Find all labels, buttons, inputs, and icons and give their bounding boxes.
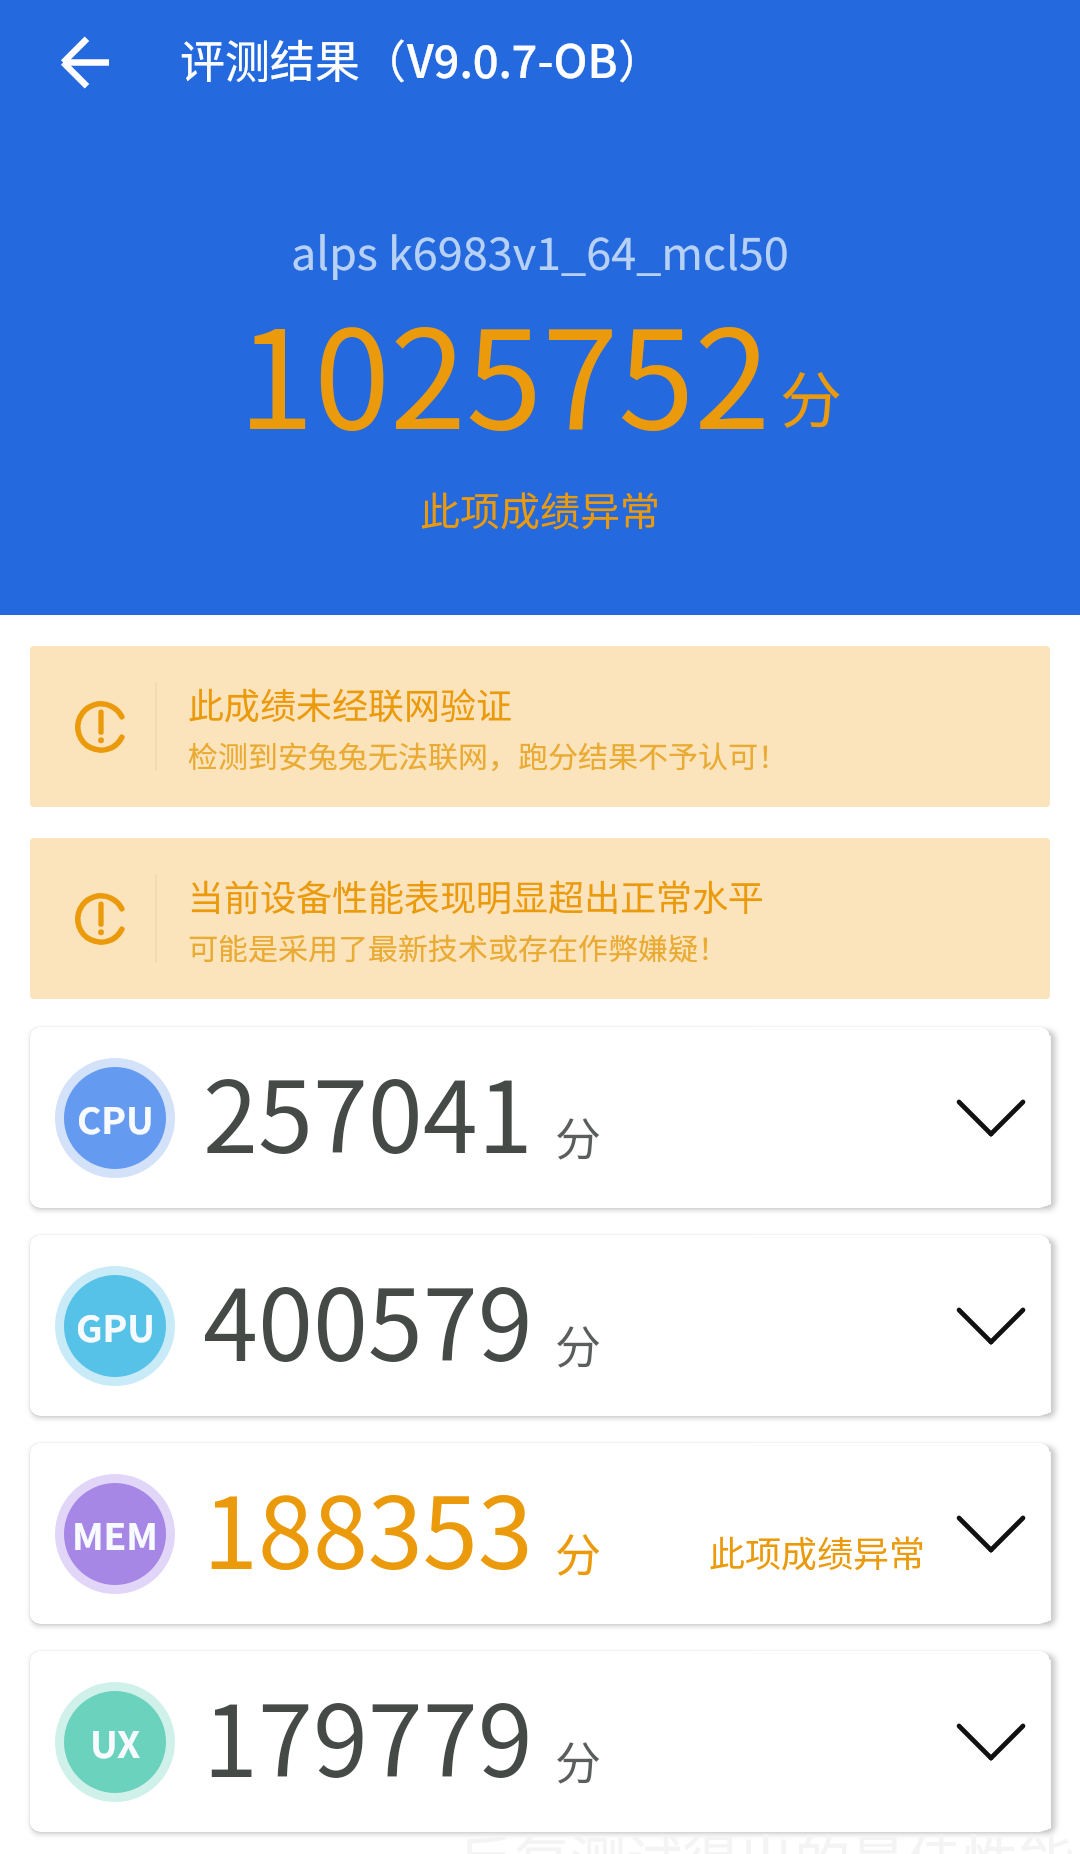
staticText: 分 [555, 1519, 601, 1586]
staticText: 188353 [203, 1454, 533, 1597]
staticText: GPU [76, 1299, 155, 1353]
button[interactable]: MEM [30, 1443, 1050, 1624]
staticText: 此成绩未经联网验证 [188, 677, 513, 729]
staticText: （ [361, 26, 407, 91]
staticText: 检测到安兔兔无法联网，跑分结果不予认可！ [188, 733, 788, 776]
staticText: 400579 [203, 1246, 533, 1389]
button[interactable]: GPU [30, 1235, 1050, 1416]
button[interactable]: Back [36, 14, 132, 110]
staticText: 当前设备性能表现明显超出正常水平 [188, 869, 765, 921]
staticText: 反复测试得出的最佳性能 [458, 1817, 1074, 1854]
button[interactable]: 此成绩未经联网验证 [30, 646, 1050, 807]
staticText: 179779 [203, 1662, 533, 1805]
staticText: 分 [555, 1727, 601, 1794]
staticText: ） [618, 26, 664, 91]
staticText: CPU [77, 1091, 154, 1145]
button[interactable]: CPU [30, 1027, 1050, 1208]
staticText: alps k6983v1_64_mcl50 [291, 218, 789, 283]
staticText: MEM [72, 1507, 158, 1561]
staticText: 此项成绩异常 [420, 480, 660, 538]
staticText: 分 [555, 1311, 601, 1378]
staticText: 分 [780, 351, 843, 441]
staticText: 257041 [203, 1038, 533, 1181]
staticText: 评测结果 [180, 26, 361, 91]
staticText: 1025752 [238, 270, 771, 468]
staticText: V9.0.7-OB [407, 26, 618, 91]
button[interactable]: UX [30, 1651, 1050, 1832]
staticText: UX [90, 1715, 141, 1769]
staticText: 可能是采用了最新技术或存在作弊嫌疑！ [188, 925, 728, 968]
staticText: 分 [555, 1103, 601, 1170]
button[interactable]: 当前设备性能表现明显超出正常水平 [30, 838, 1050, 999]
staticText: 此项成绩异常 [709, 1525, 926, 1577]
